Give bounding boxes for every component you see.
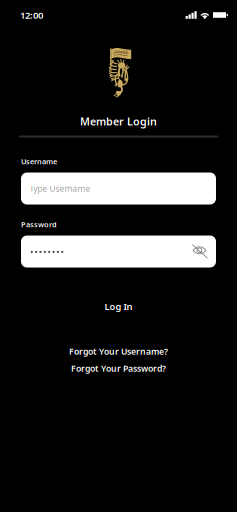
staticText: Member Login	[80, 114, 157, 128]
staticText: Type Username	[29, 183, 90, 194]
staticText: Log In	[104, 300, 132, 313]
staticText: Forgot Your Username?	[69, 346, 168, 357]
button[interactable]: Log In	[0, 295, 237, 317]
staticText: Username	[21, 156, 57, 166]
staticText: 12:00	[20, 8, 43, 22]
button[interactable]: Forgot Your Password?	[0, 361, 237, 375]
button[interactable]	[21, 235, 216, 267]
staticText: Forgot Your Password?	[71, 363, 166, 374]
button[interactable]: Forgot Your Username?	[0, 344, 237, 358]
staticText: Password	[21, 219, 57, 229]
button[interactable]: Type Username	[21, 172, 216, 204]
